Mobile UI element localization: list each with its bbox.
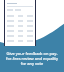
staticText: Give your feedback on pay-for-fees revie… — [5, 51, 59, 66]
